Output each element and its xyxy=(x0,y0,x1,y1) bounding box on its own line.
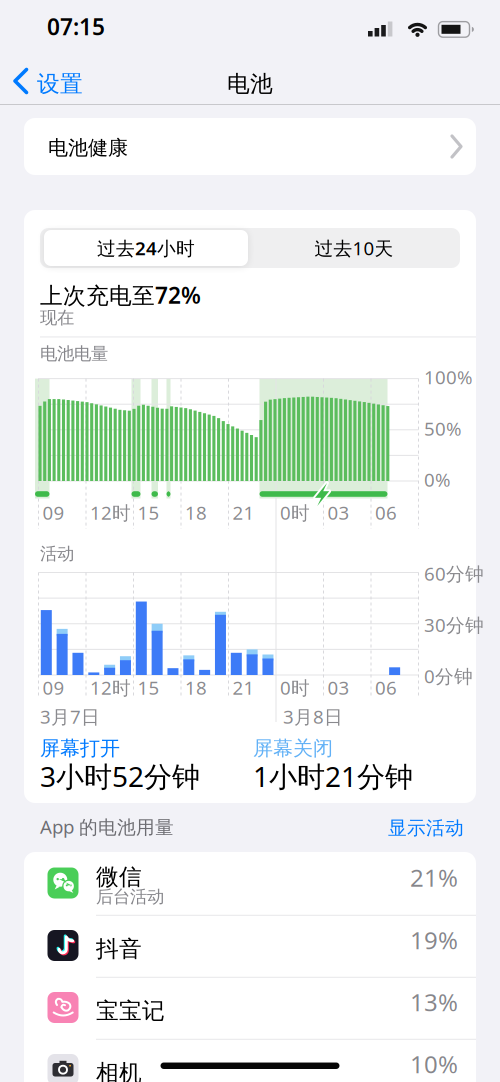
button[interactable]: 显示活动 xyxy=(388,816,464,839)
staticText: 09 xyxy=(42,500,64,525)
staticText: 3月8日 xyxy=(283,704,343,729)
staticText: 50% xyxy=(424,416,462,441)
staticText: 100% xyxy=(424,364,473,389)
staticText: 过去10天 xyxy=(314,235,393,260)
staticText: 18 xyxy=(185,500,207,525)
staticText: 屏幕打开 xyxy=(40,736,120,761)
staticText: 宝宝记 xyxy=(96,997,165,1025)
staticText: 电池 xyxy=(227,70,273,98)
staticText: 03 xyxy=(327,675,349,700)
staticText: 电池电量 xyxy=(40,343,108,364)
staticText: 10% xyxy=(410,1048,458,1080)
staticText: 15 xyxy=(137,675,159,700)
staticText: 后台活动 xyxy=(96,886,164,907)
staticText: 18 xyxy=(185,675,207,700)
staticText: 3小时52分钟 xyxy=(40,757,200,795)
staticText: 相机 xyxy=(96,1059,142,1082)
staticText: 微信 xyxy=(96,863,142,891)
staticText: 12时 xyxy=(90,675,131,700)
staticText: 屏幕关闭 xyxy=(253,736,333,761)
staticText: 0时 xyxy=(280,675,310,700)
staticText: 09 xyxy=(42,675,64,700)
staticText: 活动 xyxy=(40,543,74,564)
staticText: 过去24小时 xyxy=(97,235,195,260)
staticText: 0分钟 xyxy=(424,663,473,688)
button[interactable]: 过去10天 xyxy=(252,230,456,266)
button[interactable]: 微信 xyxy=(24,852,476,914)
staticText: 60分钟 xyxy=(424,561,484,586)
staticText: 06 xyxy=(375,500,397,525)
staticText: 设置 xyxy=(37,70,83,98)
staticText: 显示活动 xyxy=(388,816,464,839)
staticText: 上次充电至72% xyxy=(40,280,201,310)
staticText: 电池健康 xyxy=(48,135,128,160)
staticText: 15 xyxy=(137,500,159,525)
staticText: 0% xyxy=(424,467,451,492)
staticText: 抖音 xyxy=(96,935,142,963)
staticText: 13% xyxy=(410,986,458,1018)
staticText: 21 xyxy=(232,500,254,525)
staticText: 现在 xyxy=(40,307,74,328)
staticText: 3月7日 xyxy=(40,704,100,729)
staticText: 21 xyxy=(232,675,254,700)
button[interactable]: 宝宝记 xyxy=(24,976,476,1039)
button[interactable]: 相机 xyxy=(24,1038,476,1082)
staticText: 21% xyxy=(410,861,458,893)
button[interactable]: 过去24小时 xyxy=(44,230,248,266)
staticText: 30分钟 xyxy=(424,612,484,637)
staticText: App 的电池用量 xyxy=(40,814,174,839)
staticText: 06 xyxy=(375,675,397,700)
staticText: 19% xyxy=(410,924,458,956)
button[interactable]: 设置 xyxy=(0,62,500,1082)
staticText: 03 xyxy=(327,500,349,525)
button[interactable]: 抖音 xyxy=(24,914,476,977)
staticText: 12时 xyxy=(90,500,131,525)
staticText: 07:15 xyxy=(47,11,105,42)
button[interactable]: 电池健康 xyxy=(24,118,476,175)
staticText: 1小时21分钟 xyxy=(253,757,413,795)
staticText: 0时 xyxy=(280,500,310,525)
